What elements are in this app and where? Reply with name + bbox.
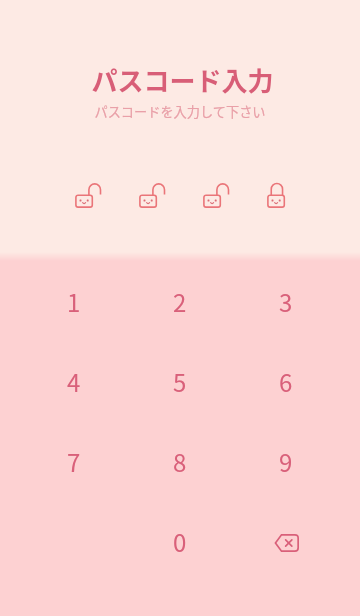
- button[interactable]: 6: [233, 341, 339, 421]
- staticText: 9: [279, 444, 293, 479]
- staticText: パスコードを入力して下さい: [94, 102, 266, 121]
- staticText: 4: [67, 364, 81, 399]
- staticText: 7: [67, 444, 81, 479]
- button[interactable]: 4: [21, 341, 127, 421]
- button[interactable]: 3: [233, 262, 339, 341]
- other: Passcode digit 3 empty: [202, 180, 266, 208]
- other: Passcode digit 2 empty: [138, 180, 202, 208]
- button[interactable]: 0: [127, 501, 233, 581]
- staticText: 6: [279, 364, 293, 399]
- button[interactable]: 1: [21, 262, 127, 341]
- other: Passcode digit 1 empty: [74, 180, 138, 208]
- button[interactable]: 9: [233, 421, 339, 501]
- other: Delete: [263, 518, 309, 564]
- other: Passcode digit 4 entered: [266, 180, 330, 208]
- button[interactable]: Delete: [233, 501, 339, 581]
- button[interactable]: 5: [127, 341, 233, 421]
- staticText: 0: [173, 524, 187, 559]
- staticText: 3: [279, 284, 293, 319]
- button[interactable]: 7: [21, 421, 127, 501]
- staticText: 5: [173, 364, 187, 399]
- button[interactable]: 8: [127, 421, 233, 501]
- button[interactable]: 2: [127, 262, 233, 341]
- staticText: 2: [173, 284, 187, 319]
- staticText: 1: [67, 284, 81, 319]
- staticText: 8: [173, 444, 187, 479]
- staticText: パスコード入力: [91, 61, 274, 99]
